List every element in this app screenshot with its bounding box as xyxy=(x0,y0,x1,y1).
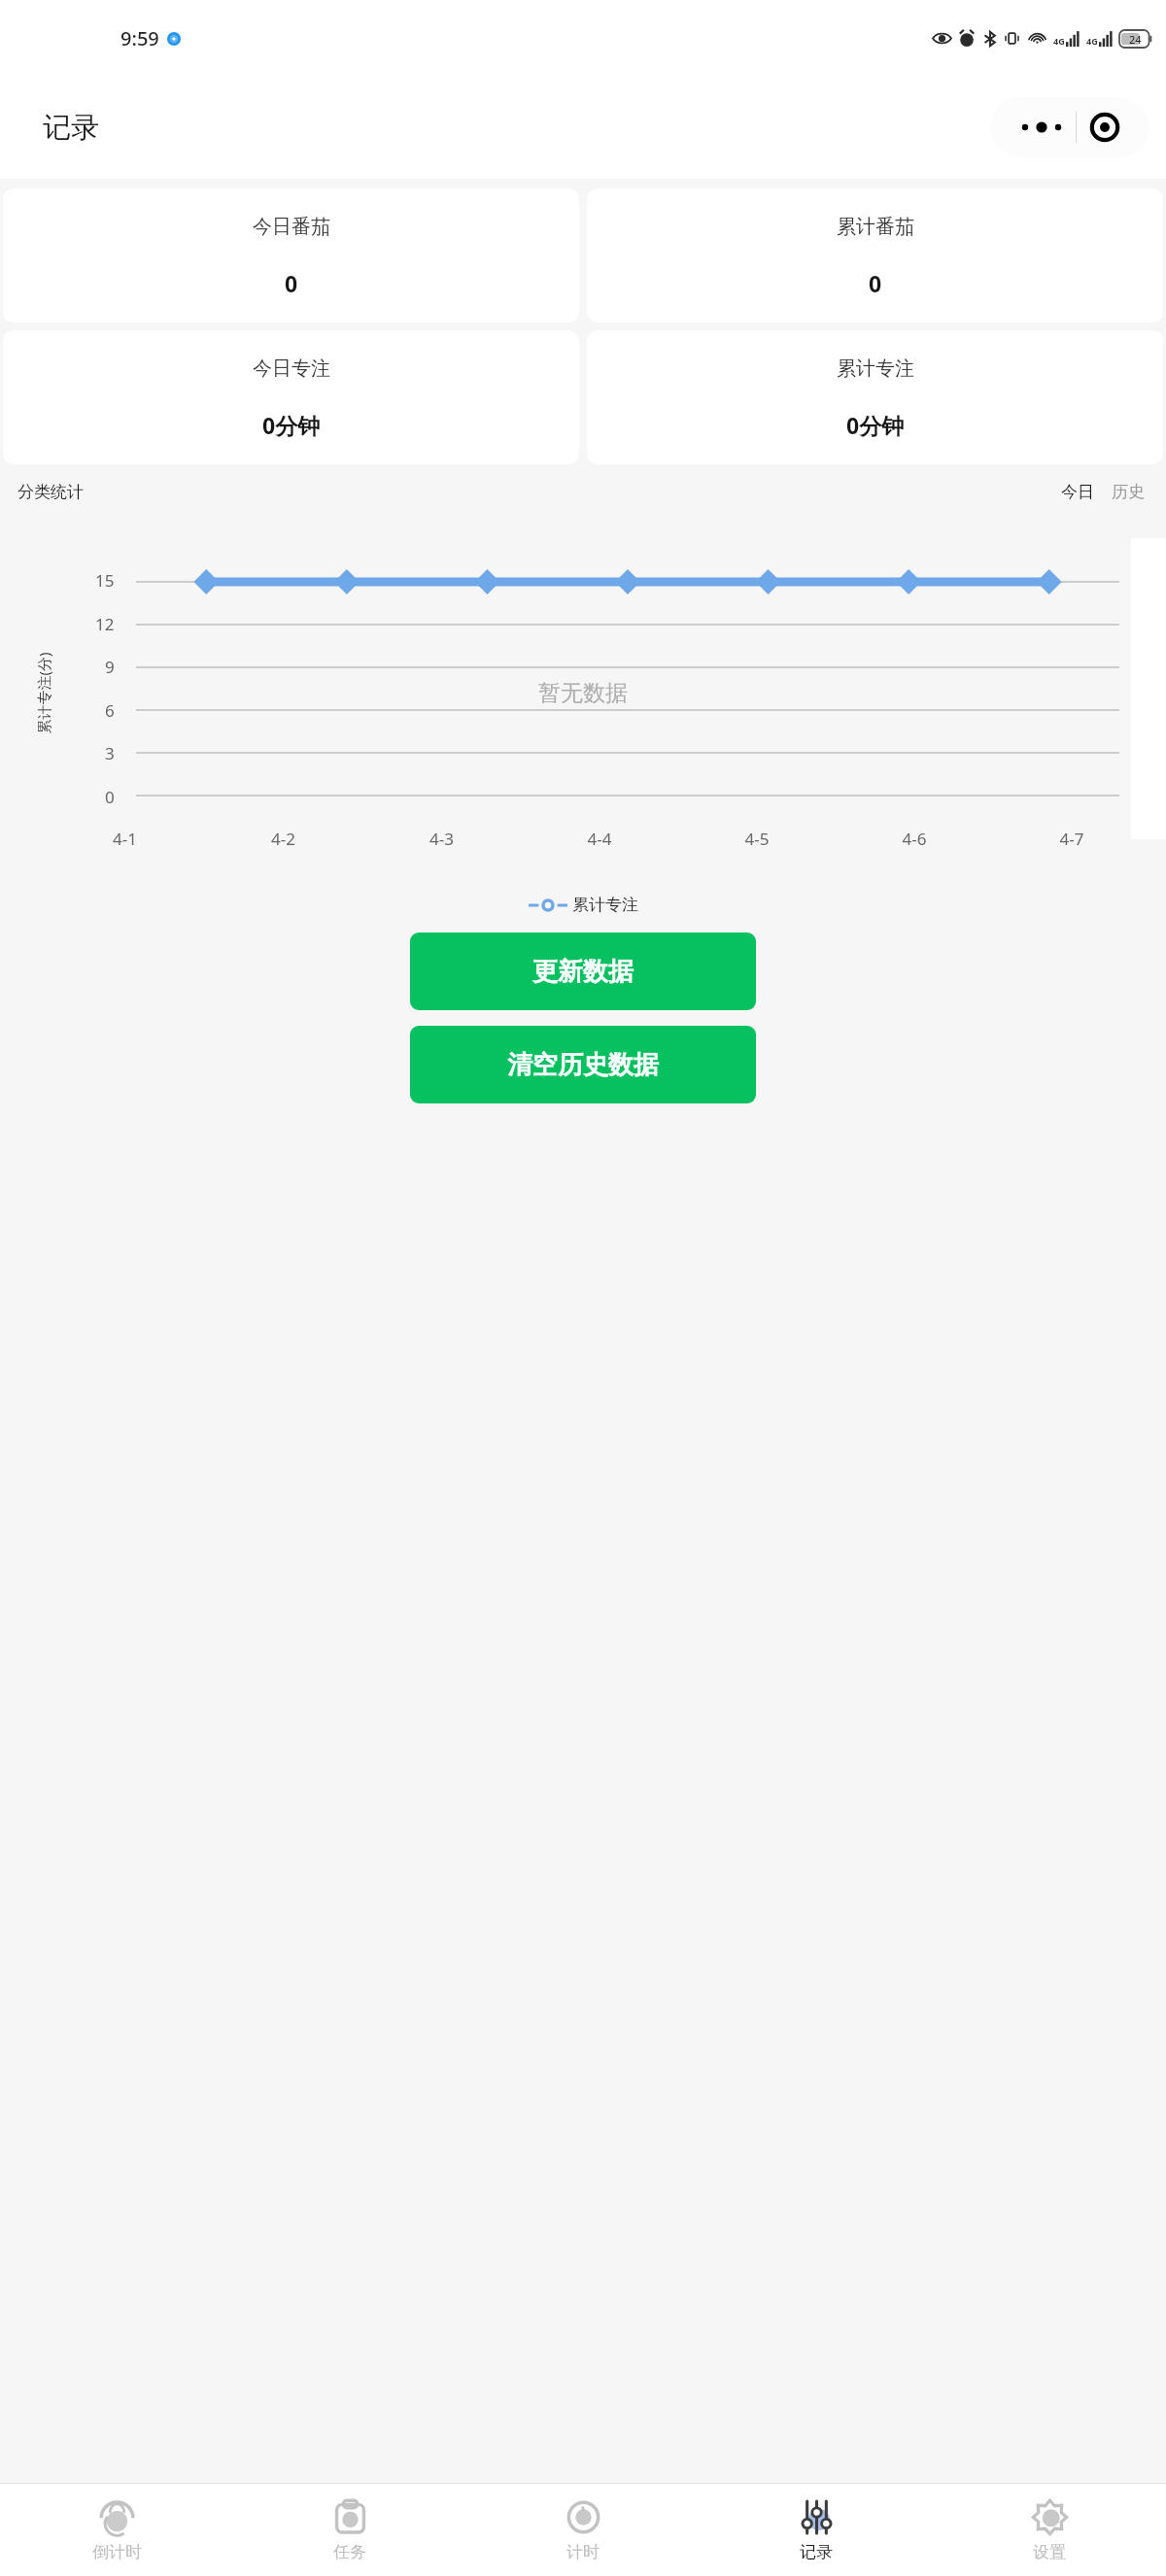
staticText: 任务 xyxy=(333,2542,366,2562)
staticText: 更新数据 xyxy=(532,956,634,988)
staticText: 记录 xyxy=(43,110,99,146)
staticText: 暂无数据 xyxy=(538,679,628,707)
staticText: 设置 xyxy=(1033,2542,1066,2562)
staticText: 累计专注 xyxy=(837,356,914,381)
staticText: 分类统计 xyxy=(17,482,84,502)
staticText: 0分钟 xyxy=(846,410,905,440)
button[interactable]: 任务 xyxy=(233,2484,466,2576)
button[interactable]: 今日番茄 xyxy=(3,188,579,322)
staticText: 0 xyxy=(285,268,298,298)
staticText: 4-1 xyxy=(46,828,204,850)
button[interactable]: 今日 xyxy=(1057,482,1098,502)
staticText: 倒计时 xyxy=(92,2542,142,2562)
staticText: 3 xyxy=(105,742,115,764)
staticText: 累计专注(分) xyxy=(34,651,53,734)
staticText: 15 xyxy=(95,569,115,592)
staticText: 12 xyxy=(95,613,115,635)
staticText: 4G xyxy=(1053,35,1065,47)
button[interactable]: 清空历史数据 xyxy=(410,1026,756,1103)
staticText: 9 xyxy=(105,656,115,678)
staticText: 历史 xyxy=(1112,482,1145,502)
button[interactable]: 累计番茄 xyxy=(587,188,1163,322)
staticText: 24 xyxy=(1129,32,1142,47)
staticText: 今日 xyxy=(1061,482,1094,502)
staticText: 4-5 xyxy=(678,828,836,850)
staticText: 今日番茄 xyxy=(253,215,330,239)
staticText: 0 xyxy=(869,268,882,298)
staticText: 清空历史数据 xyxy=(507,1049,659,1081)
staticText: 0 xyxy=(105,786,115,808)
button[interactable]: 计时 xyxy=(466,2484,700,2576)
button[interactable]: 记录 xyxy=(700,2484,933,2576)
button[interactable]: 倒计时 xyxy=(0,2484,233,2576)
staticText: 4-6 xyxy=(836,828,993,850)
button[interactable]: 今日专注 xyxy=(3,330,579,464)
staticText: 0分钟 xyxy=(262,410,321,440)
staticText: 9:59 xyxy=(120,25,159,51)
staticText: 计时 xyxy=(566,2542,600,2562)
button[interactable]: 更新数据 xyxy=(410,932,756,1010)
staticText: 4-4 xyxy=(521,828,678,850)
button[interactable]: 设置 xyxy=(933,2484,1166,2576)
staticText: 4-7 xyxy=(993,828,1150,850)
staticText: 6 xyxy=(105,699,115,722)
staticText: 今日专注 xyxy=(253,356,330,381)
staticText: 累计专注 xyxy=(572,895,638,915)
button[interactable]: Menu and close xyxy=(990,97,1149,157)
staticText: 4G xyxy=(1086,35,1098,47)
staticText: 4-3 xyxy=(362,828,521,850)
staticText: 记录 xyxy=(800,2542,833,2562)
staticText: 4-2 xyxy=(204,828,362,850)
button[interactable]: 累计专注 xyxy=(587,330,1163,464)
button[interactable]: 历史 xyxy=(1108,482,1149,502)
staticText: 累计番茄 xyxy=(837,215,914,239)
